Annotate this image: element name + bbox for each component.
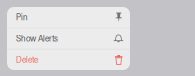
button[interactable]: Pin: [7, 7, 130, 28]
staticText: Show Alerts: [16, 33, 58, 43]
staticText: Pin: [16, 12, 28, 22]
staticText: Delete: [16, 55, 38, 65]
button[interactable]: Delete: [7, 49, 130, 70]
button[interactable]: Show Alerts: [7, 28, 130, 49]
